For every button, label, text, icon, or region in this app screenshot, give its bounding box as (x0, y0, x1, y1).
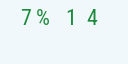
staticText: 1 (66, 5, 77, 31)
staticText: 7 (21, 5, 32, 31)
staticText: % (36, 5, 50, 31)
staticText: 4 (87, 5, 98, 31)
